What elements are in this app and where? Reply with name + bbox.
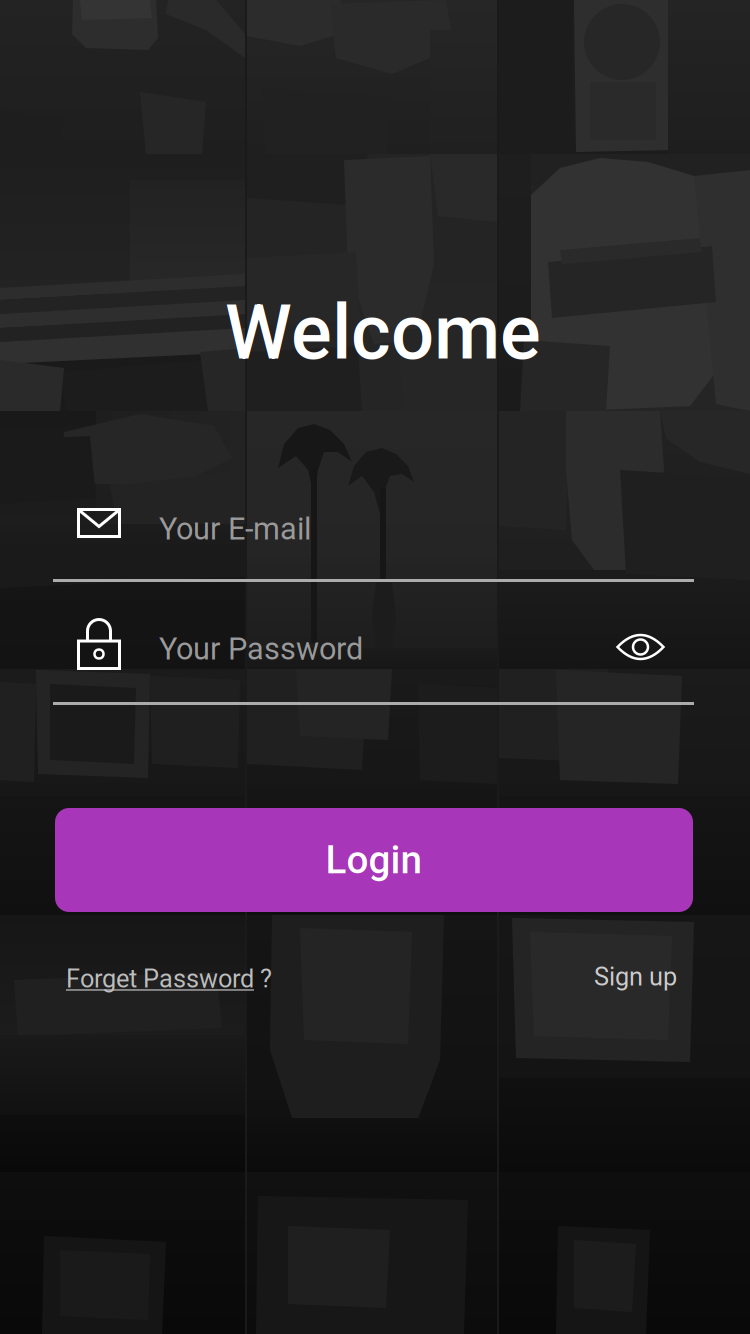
staticText: Your E-mail — [159, 511, 311, 547]
button[interactable]: Login — [55, 808, 693, 912]
button[interactable]: Sign up — [594, 962, 677, 992]
staticText: ? — [254, 964, 272, 994]
staticText: Your Password — [159, 631, 363, 667]
button[interactable]: Forget Password — [66, 964, 272, 994]
staticText: Login — [325, 837, 422, 883]
staticText: Forget Password — [66, 964, 254, 994]
button[interactable]: Show password — [600, 618, 681, 676]
staticText: Sign up — [594, 962, 677, 992]
staticText: Welcome — [225, 288, 541, 377]
